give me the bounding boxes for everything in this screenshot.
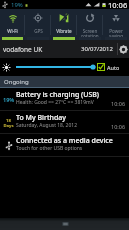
staticText: 10:06 (111, 123, 126, 130)
staticText: Screen rotation (81, 28, 99, 39)
button[interactable]: 10:06 (0, 111, 129, 134)
button[interactable]: Vibrate (51, 9, 77, 40)
staticText: Connected as a media device (16, 136, 113, 146)
staticText: Power saving (109, 28, 123, 39)
staticText: 30/07/2012 (81, 45, 113, 53)
staticText: Auto (107, 64, 120, 71)
button[interactable]: GPS (25, 9, 51, 40)
staticText: Saturday, August 18, 2012 (16, 122, 78, 129)
staticText: 19% (3, 96, 15, 103)
button[interactable]: Auto (97, 63, 120, 71)
staticText: Vibrate (56, 28, 72, 34)
staticText: 19% (11, 1, 23, 9)
staticText: 10:06 (108, 0, 128, 9)
button[interactable]: 10:06 (0, 88, 129, 111)
button[interactable]: Settings (118, 44, 129, 55)
staticText: 18 Days (3, 118, 14, 128)
button[interactable]: Connected as a media device (0, 134, 129, 157)
staticText: GPS (34, 28, 43, 34)
staticText: Ongoing (4, 78, 29, 86)
staticText: Health: Good == 27°C == 3819mV (16, 99, 94, 106)
staticText: To My Birthday (16, 113, 67, 123)
button[interactable]: Wi-Fi (0, 9, 25, 40)
staticText: Touch for other USB options (16, 145, 83, 152)
button[interactable]: Brightness (16, 61, 96, 73)
button[interactable]: Power saving (103, 9, 129, 40)
button[interactable]: Screen rotation (77, 9, 103, 40)
button[interactable]: Close notifications (59, 220, 71, 228)
staticText: Wi-Fi (7, 28, 18, 34)
staticText: Battery is charging (USB) (16, 90, 100, 100)
staticText: vodafone UK (3, 45, 43, 54)
staticText: 10:06 (111, 100, 126, 107)
